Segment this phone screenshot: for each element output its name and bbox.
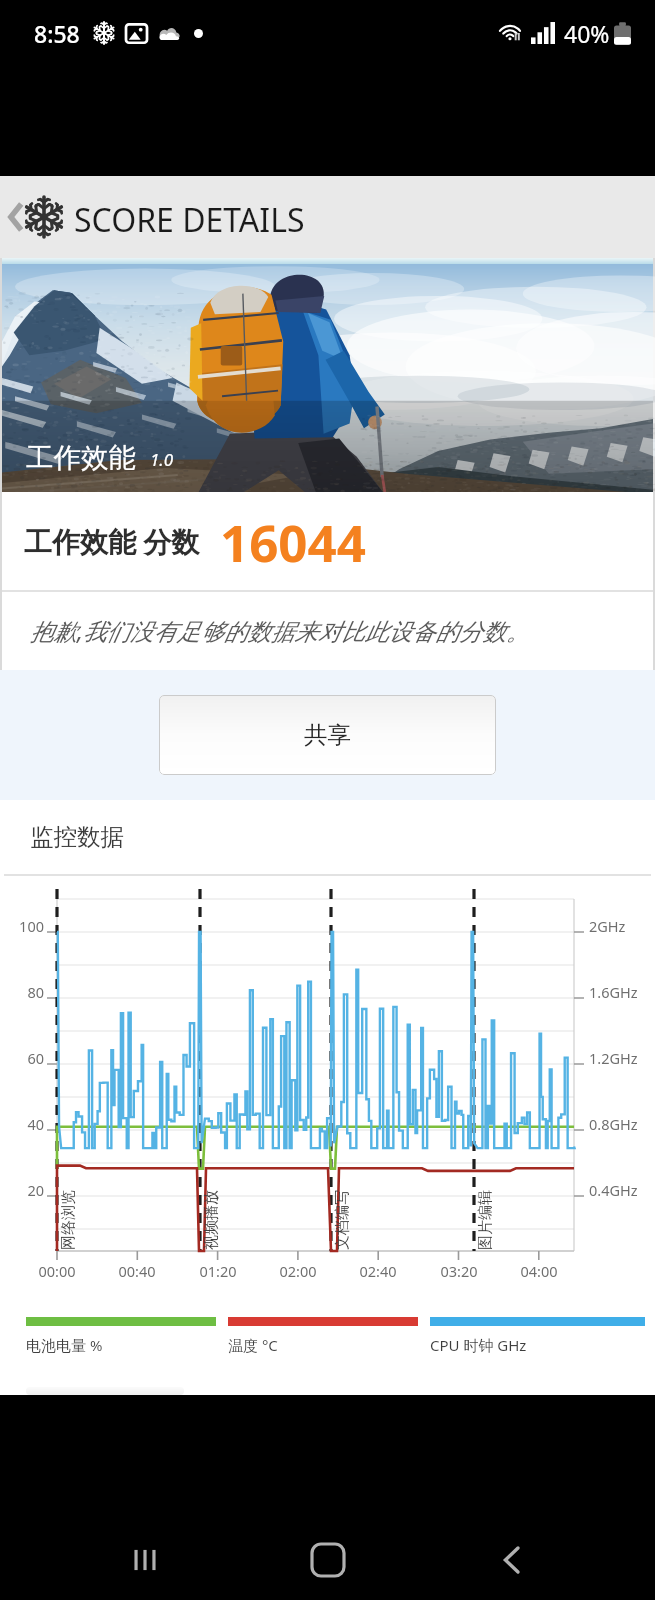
staticText: 20 — [4, 1180, 44, 1200]
staticText: 40 — [4, 1114, 44, 1134]
staticText: 电池电量 % — [26, 1335, 103, 1355]
staticText: 8:58 — [34, 18, 80, 49]
staticText: 02:00 — [253, 1261, 343, 1281]
button[interactable]: Home — [288, 1520, 368, 1600]
staticText: 00:00 — [12, 1261, 102, 1281]
staticText: 监控数据 — [30, 822, 124, 852]
staticText: 100 — [4, 916, 44, 936]
staticText: 文档编写 — [333, 1190, 352, 1250]
staticText: 40% — [564, 18, 610, 49]
staticText: 图片编辑 — [476, 1190, 495, 1250]
other: Back — [6, 200, 26, 234]
staticText: 00:40 — [92, 1261, 182, 1281]
staticText: 80 — [4, 982, 44, 1002]
staticText: 1.6GHz — [589, 982, 638, 1002]
button[interactable]: 工作效能 — [2, 264, 653, 492]
staticText: 16044 — [220, 507, 366, 576]
staticText: 03:20 — [414, 1261, 504, 1281]
staticText: 02:40 — [333, 1261, 423, 1281]
staticText: 0.8GHz — [589, 1114, 638, 1134]
staticText: 60 — [4, 1048, 44, 1068]
staticText: 01:20 — [173, 1261, 263, 1281]
staticText: CPU 时钟 GHz — [430, 1335, 527, 1355]
staticText: 共享 — [304, 720, 351, 750]
button[interactable]: Back — [0, 176, 655, 258]
staticText: 工作效能 — [26, 441, 136, 476]
button[interactable]: Recent apps — [105, 1520, 185, 1600]
staticText: 温度 °C — [228, 1335, 278, 1355]
staticText: 0.4GHz — [589, 1180, 638, 1200]
staticText: 网络浏览 — [59, 1190, 78, 1250]
staticText: 04:00 — [494, 1261, 584, 1281]
staticText: 视频播放 — [202, 1190, 221, 1250]
button[interactable] — [26, 1387, 184, 1395]
staticText: 1.0 — [150, 448, 174, 471]
button[interactable]: 共享 — [159, 695, 496, 775]
staticText: SCORE DETAILS — [74, 198, 305, 242]
staticText: 1.2GHz — [589, 1048, 638, 1068]
button[interactable]: Back — [472, 1520, 552, 1600]
staticText: 2GHz — [589, 916, 626, 936]
staticText: 工作效能 分数 — [24, 522, 200, 560]
staticText: 抱歉,我们没有足够的数据来对比此设备的分数。 — [30, 615, 530, 647]
